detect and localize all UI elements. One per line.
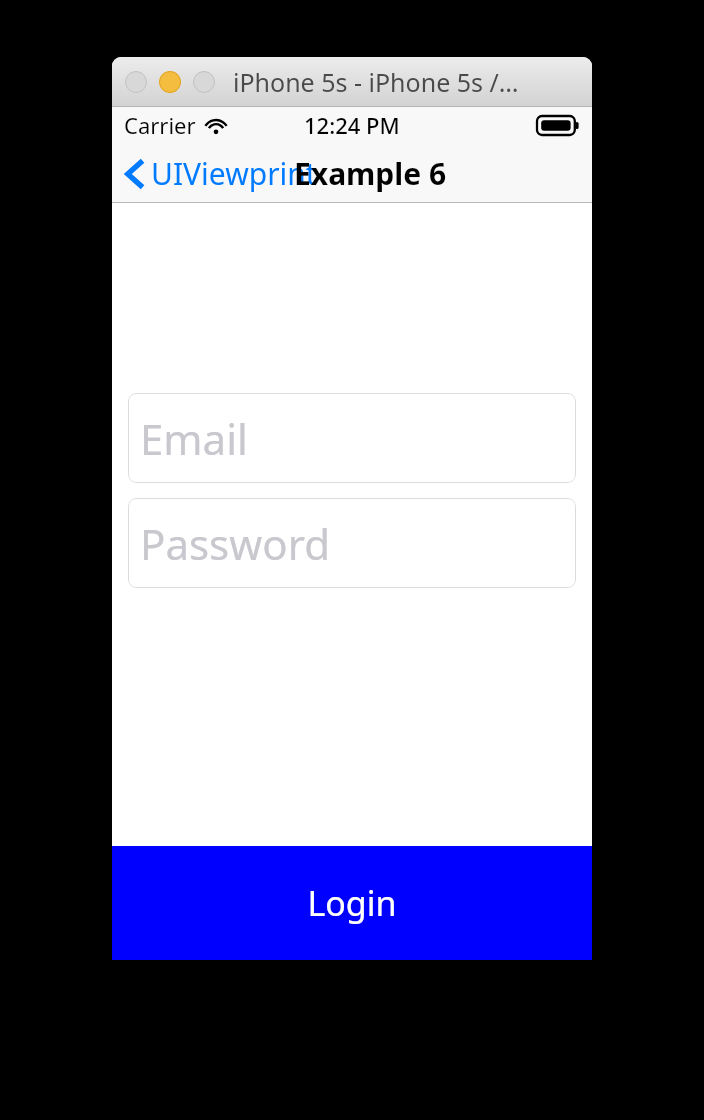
button[interactable]: Password xyxy=(128,498,576,588)
staticText: Example 6 xyxy=(294,153,447,194)
staticText: Email xyxy=(140,410,248,467)
staticText: Password xyxy=(140,515,330,572)
staticText: UIViewprint xyxy=(151,153,317,194)
button[interactable]: Close xyxy=(125,71,147,93)
other: Wi-Fi xyxy=(204,116,228,134)
button[interactable]: Back xyxy=(126,153,317,194)
staticText: 12:24 PM xyxy=(304,110,400,140)
staticText: iPhone 5s - iPhone 5s /… xyxy=(233,65,519,99)
other: Back xyxy=(126,159,144,189)
staticText: Carrier xyxy=(124,110,196,140)
button[interactable]: Zoom xyxy=(193,71,215,93)
button[interactable]: Login xyxy=(112,846,592,960)
button[interactable]: Minimize xyxy=(159,71,181,93)
button[interactable]: Email xyxy=(128,393,576,483)
staticText: Login xyxy=(307,880,397,926)
other: Battery full xyxy=(537,116,579,135)
